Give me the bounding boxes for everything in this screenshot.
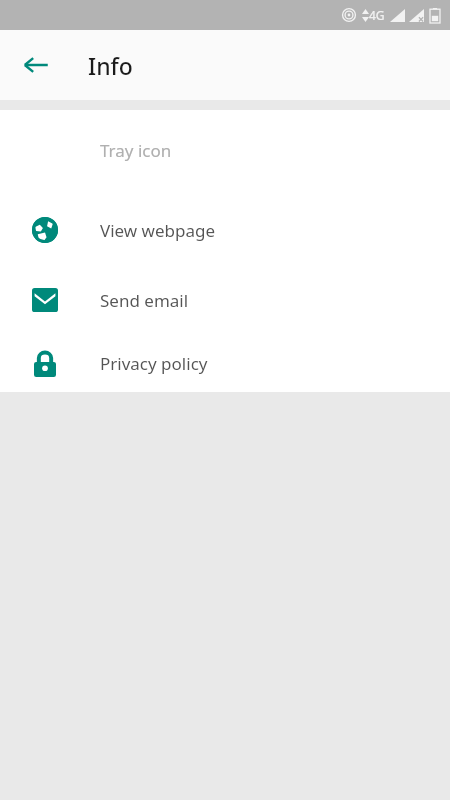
staticText: Privacy policy xyxy=(100,352,208,375)
staticText: View webpage xyxy=(100,219,216,242)
button[interactable]: View webpage xyxy=(0,195,450,265)
staticText: Info xyxy=(88,50,133,81)
button[interactable]: Back xyxy=(8,37,64,93)
button[interactable]: Send email xyxy=(0,265,450,335)
staticText: 4G xyxy=(369,7,385,23)
staticText: Tray icon xyxy=(100,139,172,162)
button[interactable]: Privacy policy xyxy=(0,335,450,392)
staticText: Send email xyxy=(100,289,189,312)
